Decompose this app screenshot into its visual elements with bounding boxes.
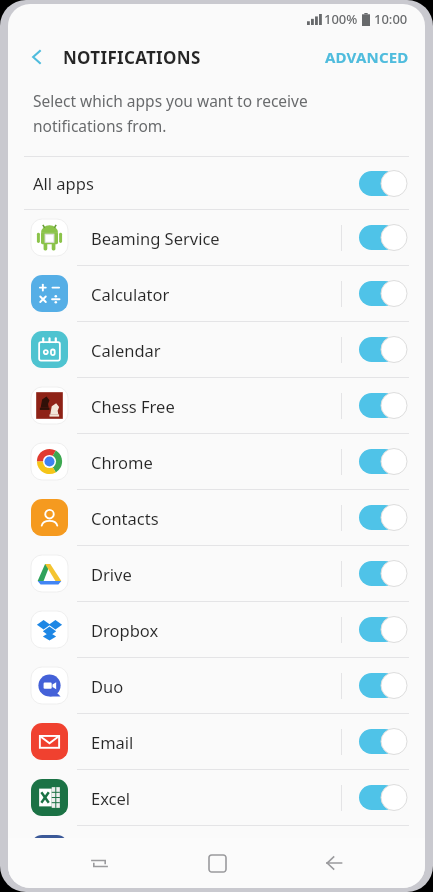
button[interactable]: Toggle [359, 505, 407, 530]
button[interactable]: Toggle [359, 729, 407, 754]
button[interactable]: Dropbox [8, 602, 425, 657]
button[interactable]: Back [307, 838, 361, 888]
button[interactable]: Recents [72, 838, 126, 888]
button[interactable]: Toggle [359, 337, 407, 362]
staticText: Facebook [91, 843, 165, 865]
button[interactable]: Chess Free [8, 378, 425, 433]
button[interactable]: Chrome [8, 434, 425, 489]
staticText: Excel [91, 787, 131, 809]
button[interactable]: Toggle [359, 561, 407, 586]
staticText: Dropbox [91, 619, 159, 641]
button[interactable]: Toggle [359, 673, 407, 698]
staticText: ADVANCED [325, 47, 409, 67]
button[interactable]: Excel [8, 770, 425, 825]
staticText: Calculator [91, 283, 170, 305]
staticText: 100% [324, 10, 358, 28]
button[interactable]: ADVANCED [319, 41, 415, 73]
button[interactable]: Toggle [359, 171, 407, 196]
button[interactable]: Home [190, 838, 244, 888]
button[interactable]: Toggle [359, 281, 407, 306]
staticText: Drive [91, 563, 132, 585]
staticText: Email [91, 731, 134, 753]
button[interactable]: Calculator [8, 266, 425, 321]
button[interactable]: Calendar [8, 322, 425, 377]
button[interactable]: Beaming Service [8, 210, 425, 265]
staticText: Select which apps you want to receive no… [33, 90, 308, 136]
button[interactable]: Toggle [359, 225, 407, 250]
button[interactable]: Toggle [359, 393, 407, 418]
button[interactable]: Toggle [359, 617, 407, 642]
staticText: Calendar [91, 339, 161, 361]
button[interactable]: Email [8, 714, 425, 769]
staticText: Duo [91, 675, 124, 697]
button[interactable]: Duo [8, 658, 425, 713]
staticText: Contacts [91, 507, 159, 529]
button[interactable]: Back [18, 38, 56, 76]
button[interactable]: Toggle [359, 785, 407, 810]
staticText: 10:00 [374, 10, 408, 28]
staticText: NOTIFICATIONS [63, 46, 201, 69]
staticText: Chess Free [91, 395, 175, 417]
staticText: Chrome [91, 451, 153, 473]
staticText: All apps [33, 172, 94, 194]
button[interactable]: All apps [8, 157, 425, 209]
button[interactable]: Drive [8, 546, 425, 601]
button[interactable]: Toggle [359, 449, 407, 474]
button[interactable]: Facebook [8, 826, 425, 881]
staticText: Beaming Service [91, 227, 220, 249]
button[interactable]: Contacts [8, 490, 425, 545]
